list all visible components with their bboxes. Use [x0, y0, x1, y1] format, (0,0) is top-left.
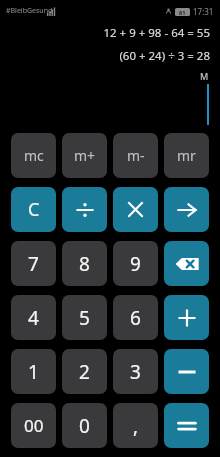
staticText: 6	[130, 305, 141, 331]
button[interactable]: m+	[62, 133, 107, 178]
staticText: m+	[74, 146, 96, 165]
button[interactable]: Minus	[164, 349, 209, 394]
button[interactable]: Plus	[164, 295, 209, 340]
button[interactable]: 0	[62, 403, 107, 448]
staticText: 7	[28, 251, 39, 277]
button[interactable]: 4	[11, 295, 56, 340]
staticText: 00	[24, 414, 44, 437]
button[interactable]: Divide	[62, 187, 107, 232]
button[interactable]: 9	[113, 241, 158, 286]
staticText: 5	[79, 305, 90, 331]
button[interactable]: m-	[113, 133, 158, 178]
staticText: 0	[79, 413, 90, 439]
button[interactable]: Equals	[164, 403, 209, 448]
button[interactable]: 6	[113, 295, 158, 340]
button[interactable]: ,	[113, 403, 158, 448]
staticText: 3	[130, 359, 141, 385]
button[interactable]: 5	[62, 295, 107, 340]
staticText: mc	[24, 146, 44, 165]
staticText: M	[200, 70, 209, 82]
staticText: 9	[130, 251, 141, 277]
staticText: 1	[28, 359, 39, 385]
staticText: #BleibGesund	[6, 6, 53, 16]
staticText: C	[28, 197, 40, 222]
staticText: 2	[79, 359, 90, 385]
staticText: 12 + 9 + 98 - 64 = 55	[103, 25, 210, 41]
button[interactable]: Next	[164, 187, 209, 232]
button[interactable]: mc	[11, 133, 56, 178]
staticText: mr	[177, 146, 196, 165]
button[interactable]: Backspace	[164, 241, 209, 286]
button[interactable]: Multiply	[113, 187, 158, 232]
staticText: m-	[127, 146, 145, 165]
button[interactable]: 2	[62, 349, 107, 394]
staticText: 8	[79, 251, 90, 277]
button[interactable]: C	[11, 187, 56, 232]
staticText: 81	[179, 9, 186, 16]
staticText: ,	[133, 413, 139, 439]
staticText: 4	[28, 305, 39, 331]
button[interactable]: 3	[113, 349, 158, 394]
staticText: 17:31	[193, 6, 214, 17]
staticText: (60 + 24) ÷ 3 = 28	[119, 48, 210, 64]
button[interactable]: 8	[62, 241, 107, 286]
button[interactable]: 7	[11, 241, 56, 286]
button[interactable]: mr	[164, 133, 209, 178]
button[interactable]: 00	[11, 403, 56, 448]
button[interactable]: 1	[11, 349, 56, 394]
